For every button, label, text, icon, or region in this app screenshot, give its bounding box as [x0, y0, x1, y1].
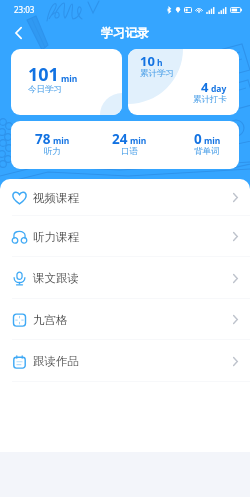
staticText: 跟读作品 — [33, 354, 79, 368]
staticText: min — [53, 135, 70, 147]
staticText: 78 — [35, 130, 51, 148]
staticText: 听力课程 — [33, 230, 79, 244]
staticText: day — [211, 83, 227, 95]
staticText: 背单词 — [194, 146, 220, 157]
staticText: min — [204, 135, 221, 147]
staticText: h — [157, 57, 163, 69]
staticText: 101 — [28, 62, 59, 87]
staticText: 4 — [201, 78, 209, 96]
staticText: 口语 — [121, 146, 138, 157]
staticText: 九宫格 — [33, 313, 68, 327]
staticText: 课文跟读 — [33, 271, 79, 285]
staticText: 累计打卡 — [193, 94, 227, 105]
button[interactable]: 课文跟读 — [0, 257, 250, 299]
button[interactable]: 听力课程 — [0, 216, 250, 257]
button[interactable]: 九宫格 — [0, 299, 250, 340]
staticText: 学习记录 — [101, 25, 149, 40]
staticText: 视频课程 — [33, 191, 79, 205]
button[interactable]: 10 — [128, 49, 239, 115]
staticText: 24 — [112, 130, 128, 148]
staticText: 23:03 — [14, 4, 35, 15]
button[interactable]: 跟读作品 — [0, 340, 250, 382]
staticText: 10 — [140, 52, 155, 70]
button[interactable]: Back — [8, 23, 28, 43]
staticText: 累计学习 — [140, 68, 174, 79]
button[interactable]: 视频课程 — [0, 179, 250, 216]
button[interactable]: 101 — [11, 49, 122, 115]
staticText: 今日学习 — [28, 84, 62, 95]
staticText: min — [130, 135, 147, 147]
staticText: 听力 — [44, 146, 61, 157]
staticText: min — [61, 73, 78, 85]
staticText: 0 — [194, 130, 202, 148]
